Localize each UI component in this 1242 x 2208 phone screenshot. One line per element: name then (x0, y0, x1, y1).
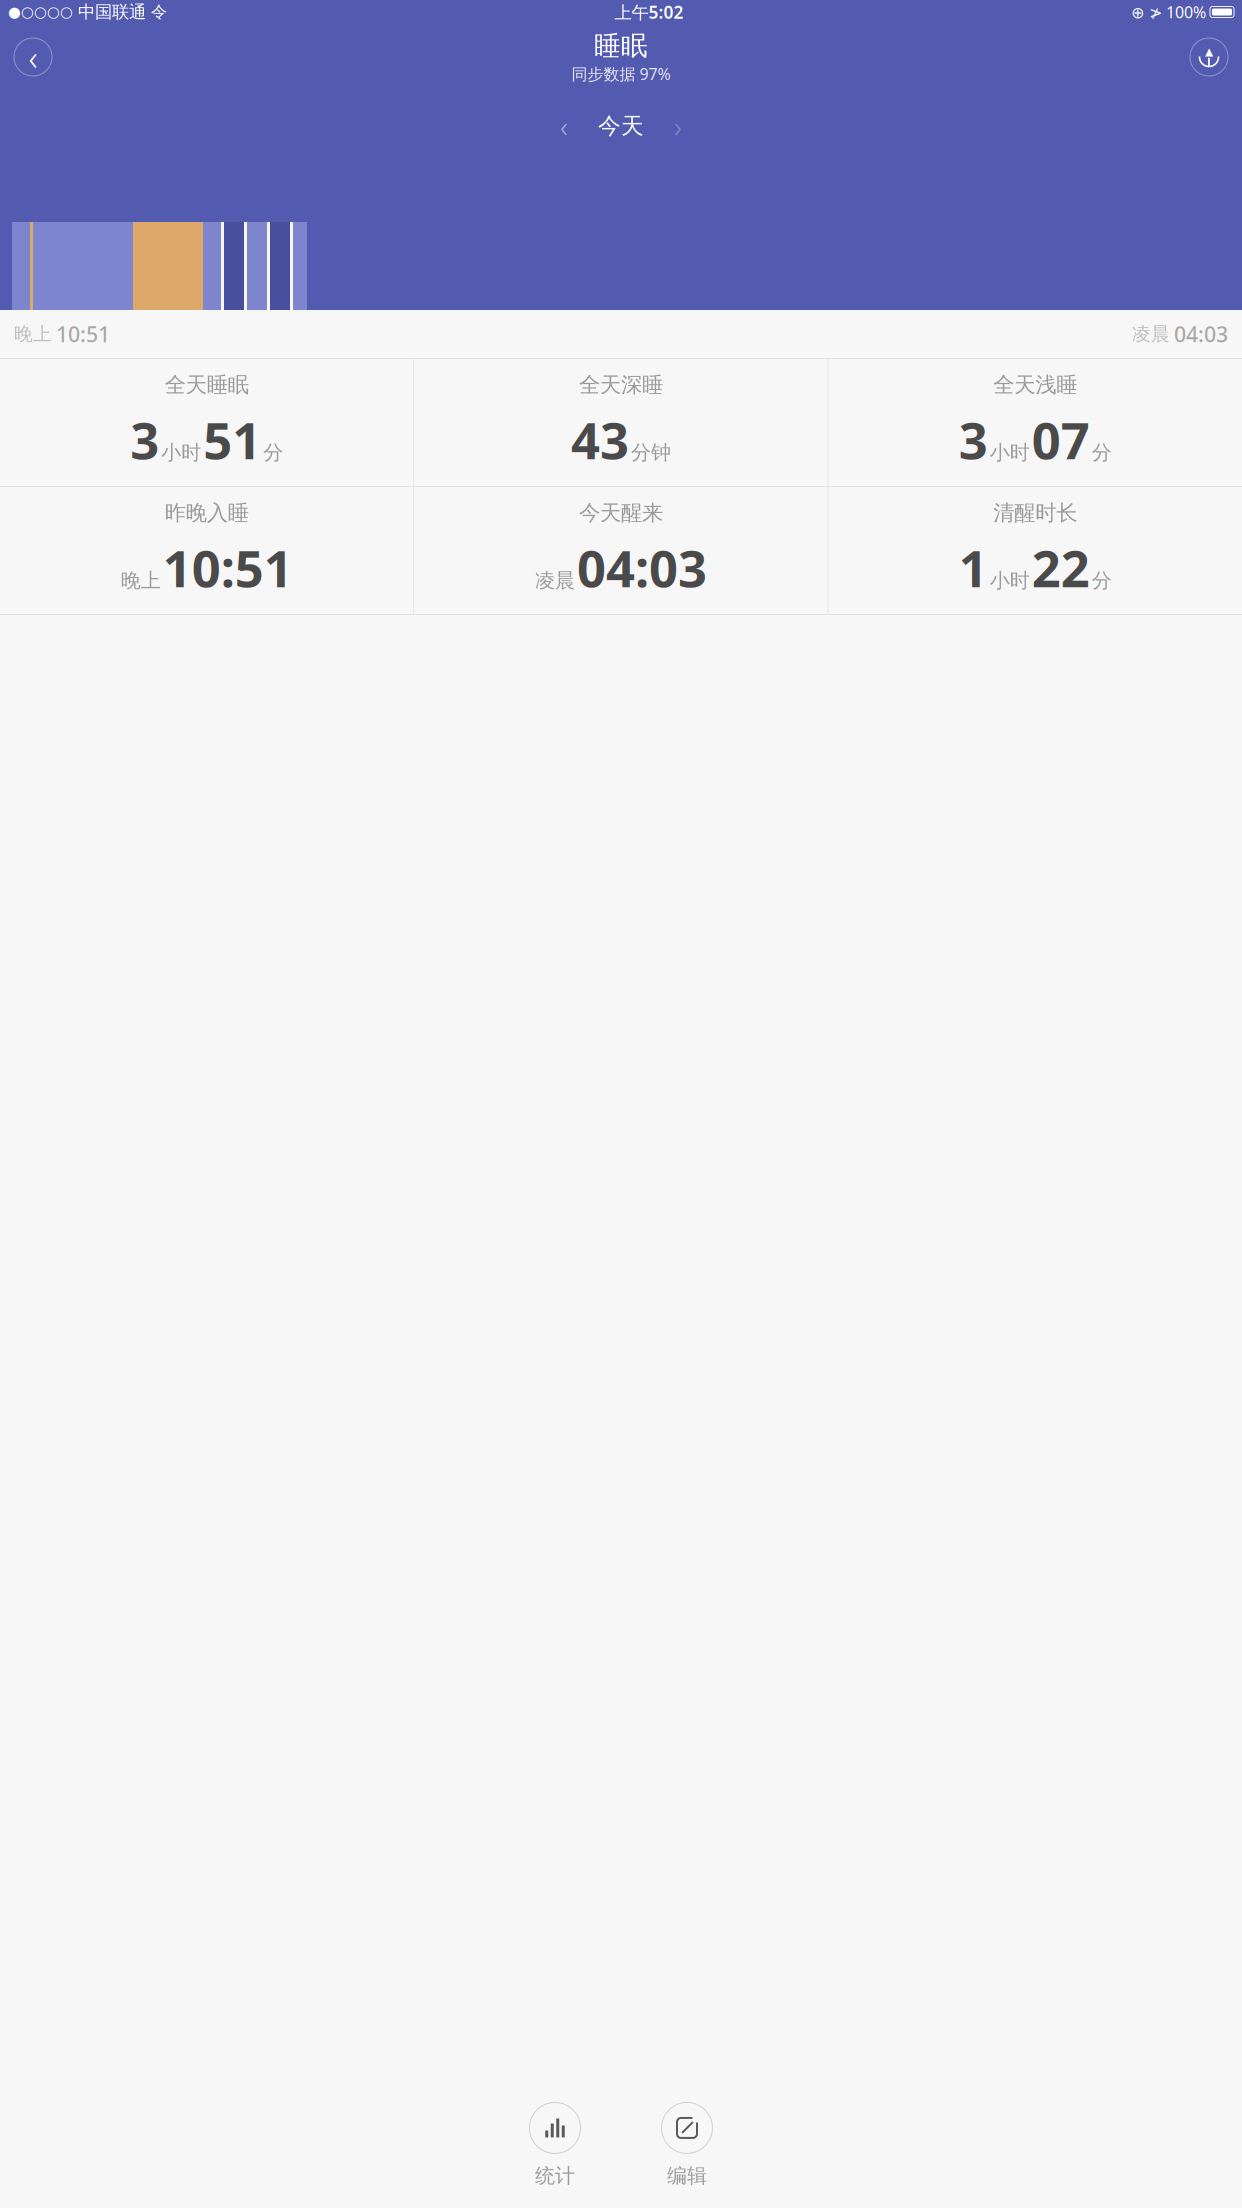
staticText: 小时 (990, 568, 1030, 593)
staticText: 分钟 (631, 440, 671, 465)
staticText: 小时 (161, 440, 201, 465)
staticText: 分 (1092, 568, 1112, 593)
staticText: 晚上 (121, 568, 161, 593)
staticText: 分 (263, 440, 283, 465)
staticText: 10:51 (163, 534, 293, 601)
staticText: 晚上 (14, 322, 52, 345)
button[interactable]: 分享 (1190, 38, 1228, 76)
staticText: 3 (959, 406, 988, 473)
staticText: 43 (571, 406, 629, 473)
button[interactable]: 返回 (14, 38, 52, 76)
staticText: ⊕ ≯ 100% (1131, 1, 1206, 23)
staticText: 04:03 (1174, 320, 1228, 348)
staticText: 51 (203, 406, 261, 473)
button[interactable]: 统计 (512, 2102, 598, 2188)
staticText: 分 (1092, 440, 1112, 465)
button[interactable]: 前一天 (542, 108, 586, 144)
staticText: ●○○○○ (8, 4, 73, 20)
staticText: 全天睡眠 (165, 372, 249, 398)
staticText: 全天浅睡 (993, 372, 1077, 398)
staticText: 编辑 (667, 2163, 707, 2188)
staticText: 中国联通 (73, 1, 151, 23)
staticText: ‹ (560, 106, 568, 145)
button[interactable]: 后一天 (656, 108, 700, 144)
staticText: 今天醒来 (579, 500, 663, 526)
staticText: 3 (130, 406, 159, 473)
staticText: ▲ (1205, 45, 1213, 57)
staticText: 凌晨 (535, 568, 575, 593)
staticText: 上午5:02 (614, 0, 683, 23)
staticText: 今天 (598, 112, 644, 140)
staticText: 1 (959, 534, 988, 601)
staticText: › (674, 106, 682, 145)
staticText: 同步数据 97% (571, 63, 670, 84)
staticText: 04:03 (577, 534, 707, 601)
staticText: 07 (1032, 406, 1090, 473)
staticText: 凌晨 (1132, 322, 1170, 345)
staticText: 睡眠 (594, 29, 648, 62)
staticText: ‹ (28, 34, 37, 80)
staticText: 全天深睡 (579, 372, 663, 398)
button[interactable]: 编辑 (644, 2102, 730, 2188)
staticText: 10:51 (56, 320, 110, 348)
staticText: 令 (151, 2, 167, 22)
staticText: 统计 (535, 2163, 575, 2188)
staticText: 清醒时长 (993, 500, 1077, 526)
staticText: 22 (1032, 534, 1090, 601)
staticText: 昨晚入睡 (165, 500, 249, 526)
staticText: 小时 (990, 440, 1030, 465)
